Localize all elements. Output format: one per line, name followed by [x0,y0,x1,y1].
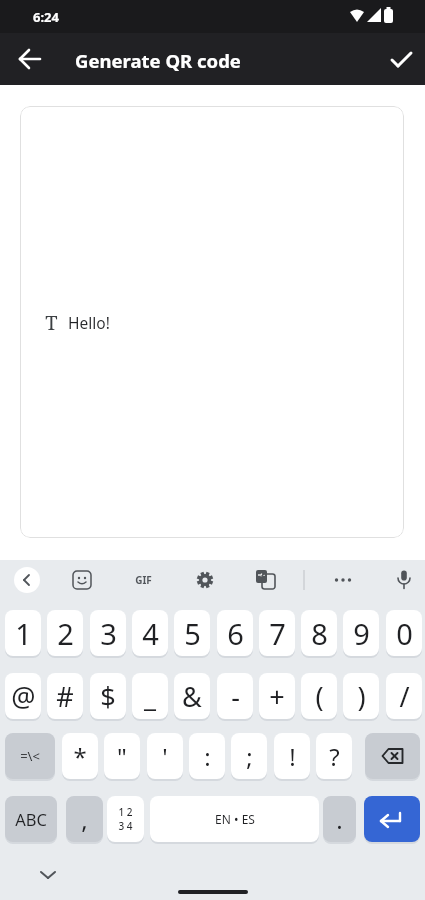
button[interactable]: 9 [343,610,379,656]
button[interactable]: ' [147,733,183,779]
staticText: ; [246,740,253,773]
staticText: EN • ES [215,811,255,827]
button[interactable]: ABC [5,796,57,842]
button[interactable] [392,568,416,592]
staticText: $ [100,678,116,715]
staticText: Generate QR code [75,48,241,73]
button[interactable]: # [47,673,83,719]
button[interactable] [193,568,217,592]
staticText: + [269,678,285,715]
button[interactable]: : [189,733,225,779]
staticText: * [73,740,87,773]
staticText: ' [162,740,168,773]
button[interactable]: GIF [128,568,158,592]
button[interactable]: 1 2 [107,796,144,842]
staticText: 3 4 [118,819,133,833]
staticText: GIF [135,573,152,587]
button[interactable]: ) [343,673,379,719]
staticText: 0 [396,614,413,653]
staticText: 4 [142,614,159,653]
staticText: ? [329,740,340,773]
button[interactable]: 6 [217,610,253,656]
button[interactable]: ! [274,733,310,779]
button[interactable] [14,567,40,593]
staticText: 9 [353,614,370,653]
staticText: Hello! [68,312,110,333]
button[interactable]: 2 [47,610,83,656]
staticText: ( [315,678,324,715]
button[interactable]: 5 [174,610,210,656]
staticText: " [117,740,127,773]
button[interactable]: / [386,673,422,719]
staticText: 1 [15,614,32,653]
staticText: ! [289,740,296,773]
button[interactable]: . [323,796,356,842]
button[interactable]: ( [301,673,337,719]
staticText: 5 [184,614,201,653]
button[interactable]: _ [132,673,168,719]
button[interactable]: ; [231,733,267,779]
staticText: 6 [227,614,244,653]
button[interactable]: 7 [259,610,295,656]
button[interactable]: " [104,733,140,779]
button[interactable]: - [217,673,253,719]
button[interactable]: & [174,673,210,719]
staticText: T [45,309,58,336]
button[interactable]: 3 [90,610,126,656]
button[interactable]: =\< [5,733,55,779]
button[interactable]: * [62,733,98,779]
button[interactable] [10,39,50,79]
staticText: / [399,678,410,715]
staticText: =\< [20,747,40,765]
button[interactable]: T [20,106,404,538]
staticText: @ [11,678,36,715]
button[interactable]: , [66,796,103,842]
button[interactable] [381,39,421,79]
button[interactable]: @ [5,673,41,719]
staticText: _ [144,678,156,715]
staticText: & [182,678,202,715]
button[interactable]: EN • ES [150,796,319,842]
staticText: 2 [57,614,74,653]
staticText: ) [357,678,366,715]
button[interactable] [364,796,420,842]
button[interactable]: 8 [301,610,337,656]
staticText: 7 [269,614,286,653]
button[interactable]: + [259,673,295,719]
staticText: , [81,803,88,836]
button[interactable]: 4 [132,610,168,656]
staticText: - [231,678,240,715]
button[interactable] [70,568,94,592]
staticText: . [336,803,343,836]
staticText: 3 [100,614,117,653]
staticText: ABC [15,808,47,830]
staticText: 1 2 [118,805,133,819]
button[interactable]: $ [90,673,126,719]
staticText: 6:24 [33,8,59,26]
button[interactable] [365,733,420,779]
button[interactable]: ? [316,733,352,779]
button[interactable] [253,568,277,592]
button[interactable]: 0 [386,610,422,656]
staticText: : [204,740,211,773]
button[interactable]: 1 [5,610,41,656]
staticText: 8 [311,614,328,653]
staticText: # [56,678,74,715]
